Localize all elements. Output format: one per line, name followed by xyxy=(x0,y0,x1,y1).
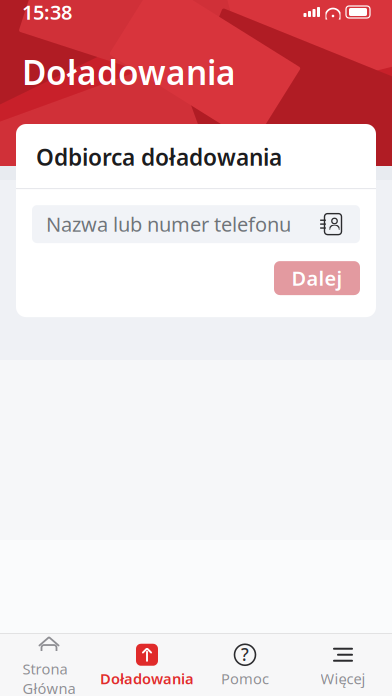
staticText: Więcej xyxy=(320,669,365,688)
staticText: Doładowania xyxy=(100,669,194,688)
button[interactable]: Dalej xyxy=(274,261,360,295)
staticText: ? xyxy=(241,643,249,666)
staticText: Nazwa lub numer telefonu xyxy=(46,211,291,237)
staticText: Dalej xyxy=(291,265,342,291)
button[interactable]: Doładowania xyxy=(98,638,196,692)
staticText: 15:38 xyxy=(22,0,72,25)
staticText: Strona Główna xyxy=(22,659,75,696)
button[interactable]: ? xyxy=(196,638,294,692)
staticText: Doładowania xyxy=(22,50,236,94)
button[interactable]: Strona Główna xyxy=(0,628,98,696)
staticText: Odbiorca doładowania xyxy=(36,142,282,172)
button[interactable]: Nazwa lub numer telefonu xyxy=(32,205,360,243)
staticText: Pomoc xyxy=(221,669,269,688)
button[interactable]: Więcej xyxy=(294,638,392,692)
